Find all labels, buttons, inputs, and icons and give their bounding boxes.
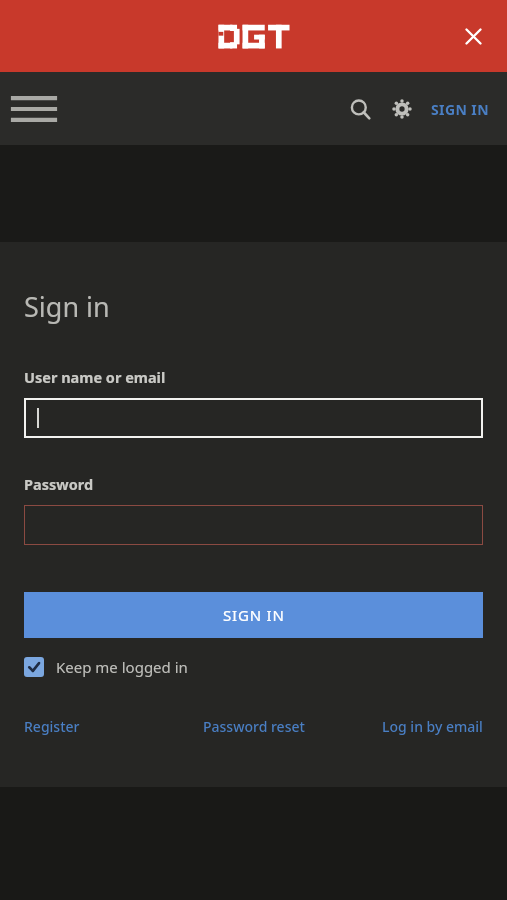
button[interactable]: SIGN IN [423,90,497,129]
staticText: User name or email [24,367,166,387]
button[interactable] [24,505,483,545]
staticText: Password [24,474,94,494]
staticText: SIGN IN [431,100,489,119]
staticText: Register [24,717,80,736]
button[interactable]: Close [451,14,495,58]
button[interactable]: Password reset [203,711,305,742]
button[interactable]: Log in by email [382,711,483,742]
button[interactable]: Menu [6,81,62,137]
staticText: Log in by email [382,717,483,736]
button[interactable]: SIGN IN [24,592,483,638]
staticText: Password reset [203,717,305,736]
button[interactable]: Keep me logged in [24,655,188,679]
button[interactable]: Register [24,711,80,742]
button[interactable] [24,398,483,438]
staticText: Sign in [24,288,110,325]
button[interactable]: Search [339,88,381,130]
staticText: SIGN IN [223,605,285,625]
button[interactable]: Settings [381,88,423,130]
staticText: Keep me logged in [56,657,188,677]
